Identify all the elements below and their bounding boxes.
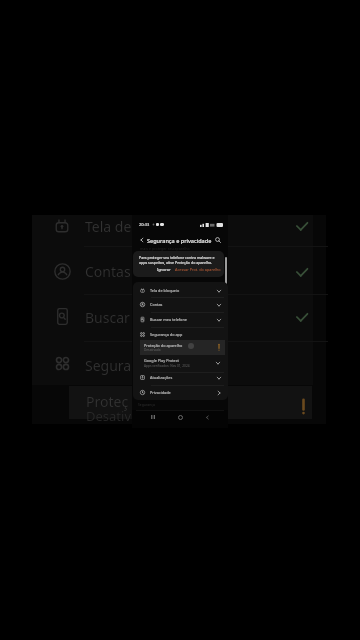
button[interactable]: Voltar [136, 234, 148, 246]
staticText: Ignorar [157, 267, 171, 272]
staticText: Atualizações [150, 375, 173, 380]
staticText: Buscar meu telefone [150, 317, 187, 322]
staticText: Segurança [138, 402, 155, 407]
staticText: Segura [85, 356, 132, 375]
button[interactable]: Buscar meu telefone [133, 312, 228, 327]
staticText: Tela de [85, 217, 132, 236]
button[interactable]: Privacidade [133, 385, 228, 400]
staticText: Para proteger seu telefone contra malwar… [139, 255, 215, 260]
button[interactable]: Contas [32, 246, 326, 294]
staticText: 20:33 [139, 222, 150, 227]
staticText: Segurança do app [150, 332, 183, 337]
staticText: Segurança e privacidade [147, 237, 212, 244]
staticText: mais e proteger seu aparelho [140, 246, 190, 251]
button[interactable]: Google Play Protect [141, 356, 224, 370]
button[interactable]: Pesquisar [212, 234, 224, 246]
staticText: Tela de bloqueio [150, 288, 180, 293]
button[interactable]: Acessar Prot. do aparelho [173, 266, 223, 273]
button[interactable]: Ignorar [155, 266, 173, 273]
button[interactable]: Recentes [147, 411, 159, 423]
staticText: Desativada [144, 348, 161, 352]
staticText: Acessar Prot. do aparelho [175, 267, 221, 272]
staticText: Desativ [86, 407, 131, 425]
staticText: Proteção do aparelho [144, 343, 183, 348]
button[interactable]: Atualizações [133, 370, 228, 385]
button[interactable]: Segurança do app [133, 327, 228, 342]
staticText: Buscar [85, 308, 130, 327]
button[interactable]: Tela de [32, 215, 326, 246]
button[interactable]: Proteç [69, 386, 312, 419]
staticText: Google Play Protect [144, 358, 179, 363]
staticText: Privacidade [150, 390, 171, 395]
staticText: Contas [150, 302, 163, 307]
button[interactable]: Buscar [32, 294, 326, 341]
button[interactable]: Contas [133, 297, 228, 312]
staticText: apps suspeitos, ative Proteção do aparel… [139, 260, 213, 265]
button[interactable]: Proteção do aparelho [140, 340, 225, 355]
button[interactable]: Segura [32, 341, 326, 385]
button[interactable]: Voltar [201, 411, 213, 423]
button[interactable]: Início [174, 411, 186, 423]
button[interactable]: Tela de bloqueio [133, 283, 228, 298]
staticText: Contas [85, 262, 131, 281]
staticText: Apps verificados: Nov 01, 2024 [144, 364, 190, 368]
staticText: Proteç [86, 392, 129, 411]
